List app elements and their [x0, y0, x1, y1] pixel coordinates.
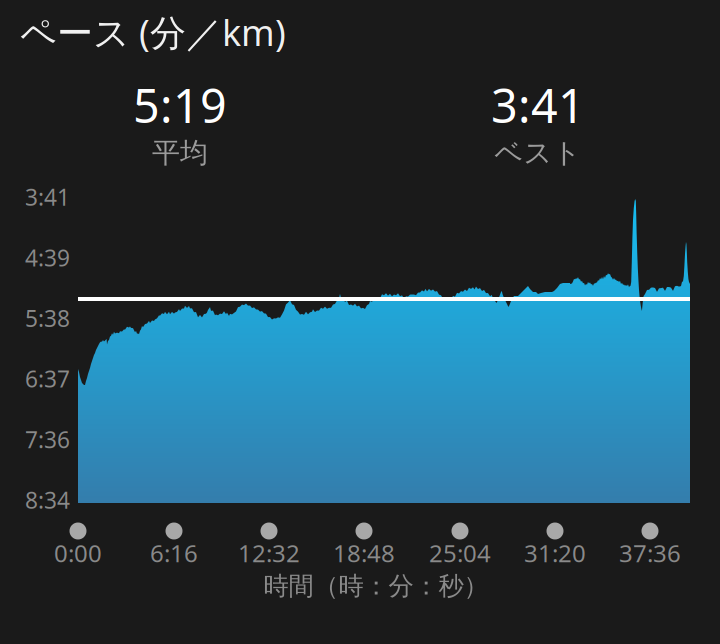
button[interactable]: 0:00	[69, 522, 86, 539]
staticText: 3:41	[491, 74, 585, 136]
staticText: 平均	[152, 136, 208, 170]
button[interactable]: 6:16	[165, 522, 182, 539]
button[interactable]: 5:19	[90, 79, 270, 165]
button[interactable]: 12:32	[260, 522, 277, 539]
staticText: 25:04	[429, 537, 491, 569]
staticText: 5:38	[25, 303, 70, 333]
staticText: ベスト	[494, 136, 581, 170]
button[interactable]: 37:36	[641, 522, 658, 539]
staticText: 6:16	[150, 537, 198, 569]
staticText: 3:41	[25, 182, 70, 212]
staticText: 6:37	[25, 364, 70, 394]
staticText: 31:20	[524, 537, 586, 569]
staticText: 5:19	[133, 74, 227, 136]
staticText: 8:34	[25, 485, 70, 515]
button[interactable]: 25:04	[451, 522, 468, 539]
button[interactable]: 31:20	[546, 522, 563, 539]
button[interactable]: ペースグラフ	[78, 197, 690, 503]
button[interactable]: 18:48	[355, 522, 372, 539]
staticText: 時間（時：分：秒）	[263, 570, 488, 601]
staticText: 0:00	[54, 537, 102, 569]
staticText: 4:39	[25, 242, 70, 273]
staticText: 7:36	[25, 424, 70, 454]
staticText: 18:48	[333, 537, 395, 569]
staticText: 12:32	[238, 537, 300, 569]
staticText: 37:36	[619, 537, 681, 569]
button[interactable]: 3:41	[448, 79, 628, 165]
staticText: ペース (分／km)	[20, 8, 286, 56]
